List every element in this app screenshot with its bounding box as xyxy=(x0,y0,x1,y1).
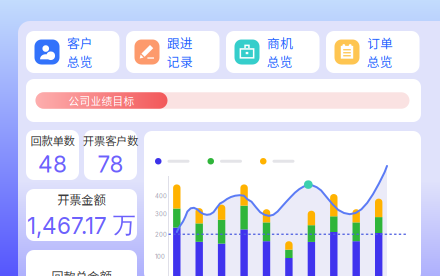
staticText: 1,467.17 万 xyxy=(27,211,136,239)
staticText: 回款单数 xyxy=(30,132,74,148)
staticText: 100 xyxy=(155,253,165,260)
staticText: 回款总金额 xyxy=(51,267,111,276)
staticText: 48 xyxy=(38,150,67,178)
staticText: 78 xyxy=(97,150,123,178)
staticText: 跟进 xyxy=(167,34,193,52)
staticText: 200 xyxy=(155,231,167,238)
button[interactable]: 客户 xyxy=(26,31,119,73)
button[interactable]: 回款总金额 xyxy=(26,250,137,276)
staticText: 总览 xyxy=(67,52,93,70)
staticText: 开票金额 xyxy=(57,190,105,208)
button[interactable]: 订单 xyxy=(326,31,419,73)
staticText: 公司业绩目标 xyxy=(68,93,134,108)
button[interactable]: 开票客户数 xyxy=(84,130,137,180)
button[interactable]: 商机 xyxy=(226,31,319,73)
staticText: 总览 xyxy=(367,52,393,70)
staticText: 300 xyxy=(155,210,167,218)
button[interactable]: 开票金额 xyxy=(26,189,137,241)
staticText: 客户 xyxy=(67,34,93,52)
staticText: 订单 xyxy=(367,34,393,52)
button[interactable]: 跟进 xyxy=(126,31,219,73)
staticText: 记录 xyxy=(167,52,193,70)
staticText: 开票客户数 xyxy=(83,132,138,148)
button[interactable]: 回款单数 xyxy=(26,130,79,180)
staticText: 商机 xyxy=(267,34,293,52)
staticText: 400 xyxy=(155,192,167,200)
staticText: 总览 xyxy=(267,52,293,70)
